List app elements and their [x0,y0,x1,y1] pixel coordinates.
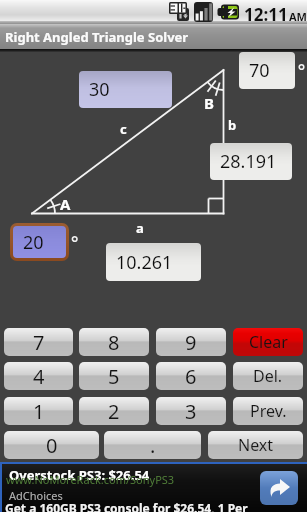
button[interactable]: 4 [4,362,73,390]
staticText: 0 [46,432,58,459]
staticText: 12:11 [244,3,288,26]
staticText: AdChoices [9,488,63,503]
button[interactable]: Clear [233,328,303,356]
staticText: 6 [185,363,197,390]
staticText: Overstock PS3: $26.54 [9,466,150,484]
staticText: Next [238,434,274,456]
button[interactable]: 8 [79,328,149,356]
staticText: Right Angled Triangle Solver [5,28,189,46]
staticText: 20 [23,230,44,255]
staticText: 3 [185,398,197,425]
button[interactable]: . [104,431,201,459]
staticText: 28.191 [220,149,277,174]
button[interactable]: 10.261 [106,243,201,281]
button[interactable]: 20 [13,226,66,258]
staticText: A [60,194,71,214]
button[interactable]: 30 [79,71,172,108]
staticText: c [120,120,127,138]
staticText: Del. [253,365,283,387]
staticText: 1 [33,398,45,425]
staticText: 10.261 [116,250,173,275]
staticText: b [228,116,237,134]
staticText: 7 [33,329,45,356]
button[interactable]: 1 [4,397,73,425]
staticText: 70 [249,58,270,83]
button[interactable]: 0 [4,431,99,459]
staticText: 30 [89,77,110,102]
staticText: Get a 160GB PS3 console for $26.54, 1 Pe… [5,500,248,512]
staticText: 5 [108,363,120,390]
staticText: Prev. [250,400,287,422]
staticText: a [136,219,144,237]
button[interactable]: Next [208,431,303,459]
staticText: Clear [249,331,288,353]
staticText: 9 [185,329,197,356]
staticText: 4 [33,363,45,390]
button[interactable]: Overstock PS3: $26.54 [2,464,307,512]
staticText: B [204,93,214,113]
staticText: 8 [108,329,120,356]
button[interactable]: 3 [156,397,226,425]
staticText: AM [289,9,307,24]
button[interactable]: 9 [156,328,226,356]
button[interactable]: 2 [79,397,149,425]
staticText: www.NoMoreRack.com/SonyPS3 [6,472,175,487]
staticText: . [150,432,156,459]
button[interactable]: 7 [4,328,73,356]
button[interactable]: 70 [239,52,295,89]
staticText: 2 [108,398,120,425]
button[interactable]: Del. [233,362,303,390]
button[interactable]: Prev. [233,397,303,425]
button[interactable]: Open advertisement [260,471,298,505]
button[interactable]: 28.191 [210,143,292,180]
button[interactable]: 6 [156,362,226,390]
button[interactable]: 5 [79,362,149,390]
